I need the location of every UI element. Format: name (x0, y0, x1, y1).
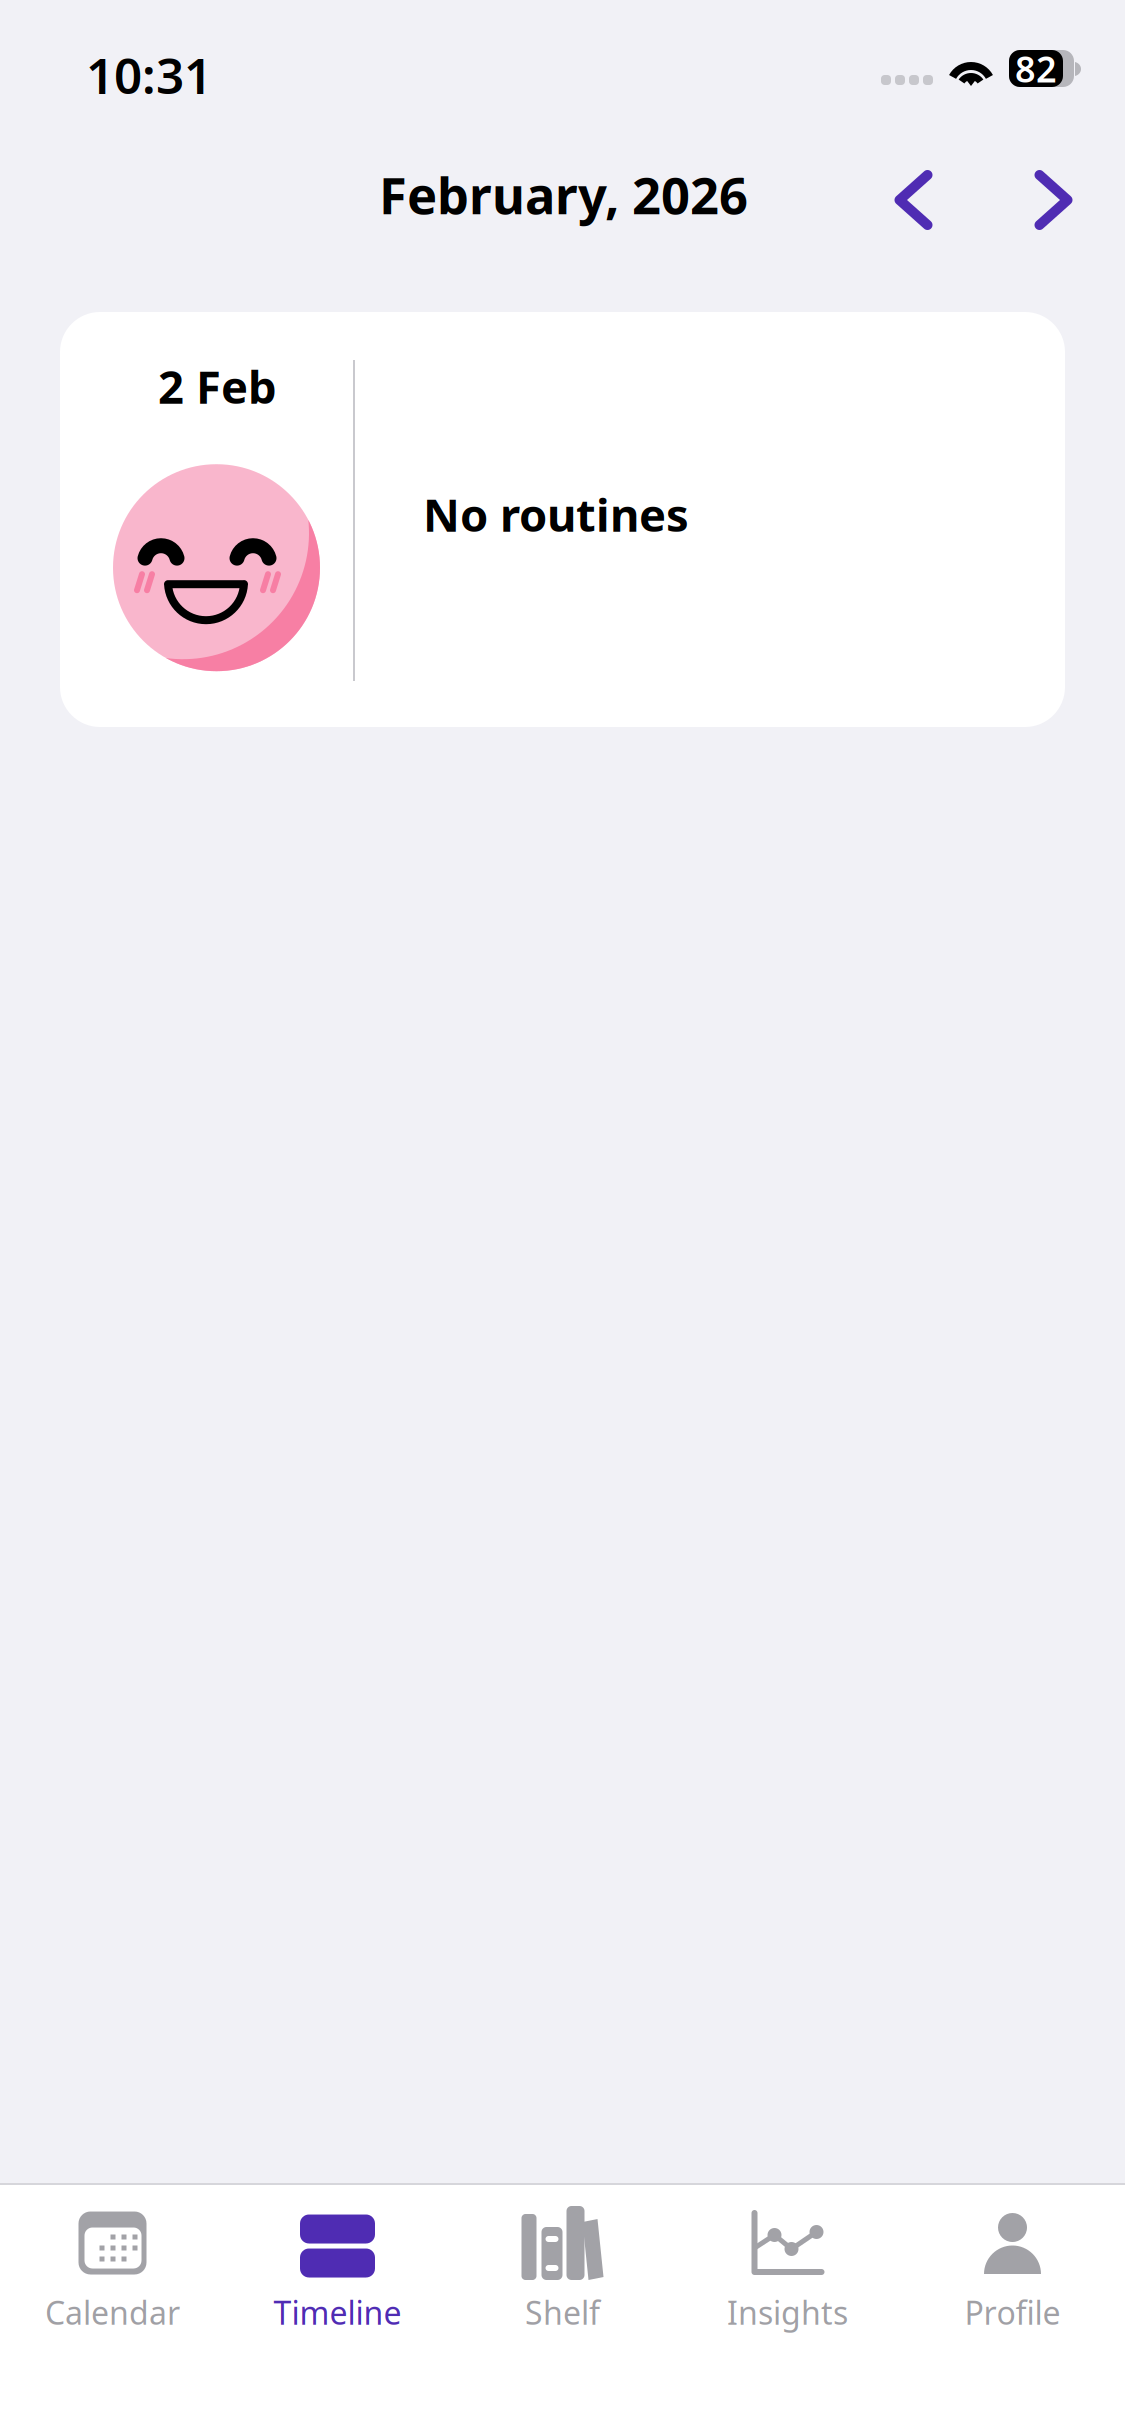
staticText: Shelf (525, 2291, 600, 2333)
staticText: Insights (727, 2291, 848, 2333)
button[interactable]: Previous month (867, 152, 963, 248)
staticText: Timeline (273, 2291, 401, 2333)
button[interactable]: Insights (675, 2185, 900, 2436)
staticText: No routines (423, 484, 689, 544)
staticText: 82 (1015, 45, 1057, 92)
staticText: Calendar (45, 2291, 180, 2333)
staticText: 10:31 (86, 42, 212, 107)
staticText: 2 Feb (158, 356, 277, 416)
staticText: Profile (964, 2291, 1060, 2333)
button[interactable]: Calendar (0, 2185, 225, 2436)
button[interactable]: Shelf (450, 2185, 675, 2436)
staticText: February, 2026 (379, 161, 748, 228)
button[interactable]: Timeline (225, 2185, 450, 2436)
button[interactable]: Profile (900, 2185, 1125, 2436)
button[interactable]: 2 Feb (60, 312, 1065, 727)
button[interactable]: Next month (1007, 152, 1103, 248)
